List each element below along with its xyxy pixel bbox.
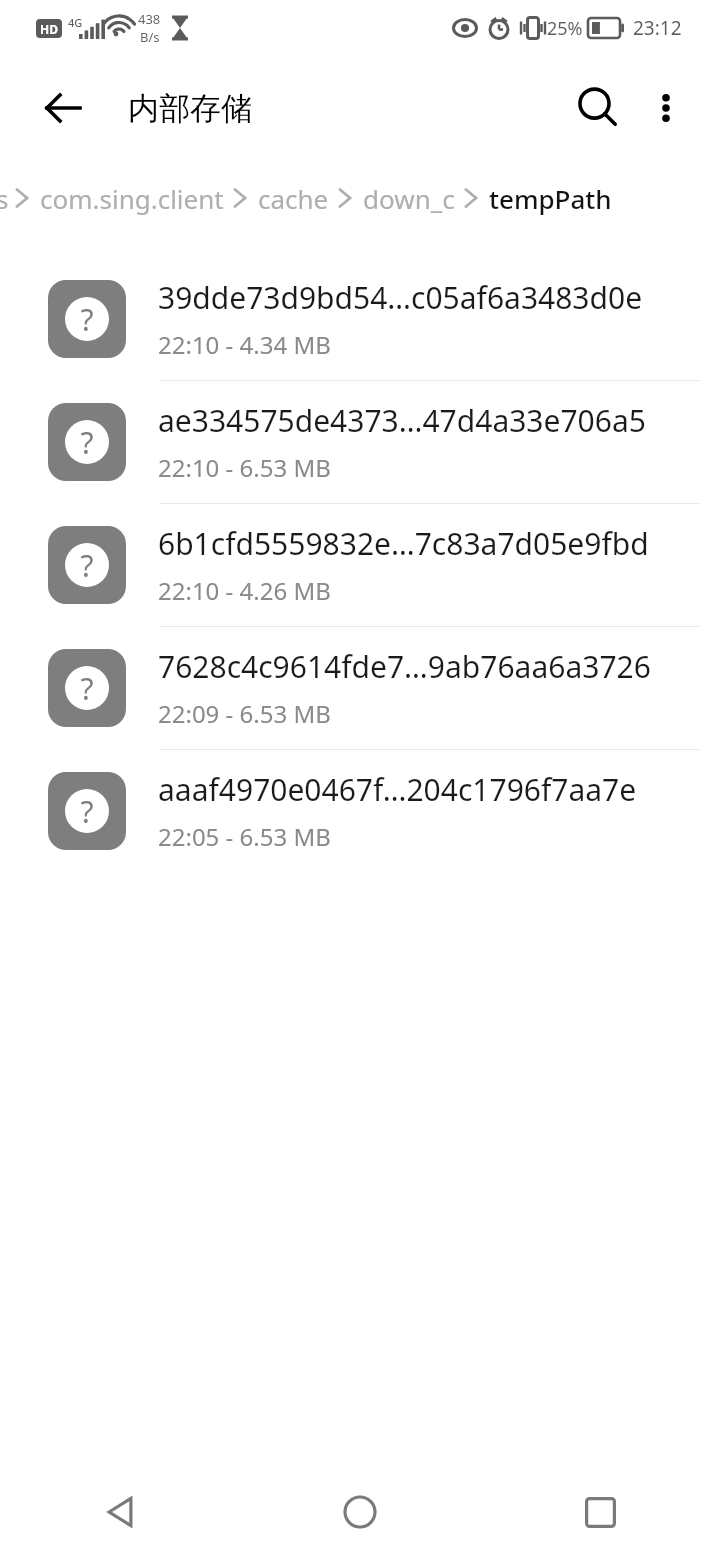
staticText: 25% <box>547 16 583 41</box>
staticText: ? <box>80 545 94 586</box>
button[interactable]: ? <box>0 381 720 504</box>
button[interactable]: ? <box>0 627 720 750</box>
staticText: down_c <box>363 181 455 216</box>
staticText: 22:10 - 4.26 MB <box>158 574 331 607</box>
staticText: 22:10 - 6.53 MB <box>158 451 331 484</box>
staticText: HD <box>40 21 58 37</box>
button[interactable]: tempPath <box>487 181 614 216</box>
button[interactable]: Search <box>562 72 634 144</box>
button[interactable]: Back <box>30 75 96 141</box>
button[interactable]: ? <box>0 258 720 381</box>
button[interactable]: ? <box>0 750 720 873</box>
staticText: ? <box>80 791 94 832</box>
staticText: ? <box>80 422 94 463</box>
staticText: 22:09 - 6.53 MB <box>158 697 331 730</box>
button[interactable]: down_c <box>361 181 457 216</box>
staticText: 39dde73d9bd54…c05af6a3483d0e <box>158 277 643 318</box>
staticText: aaaf4970e0467f…204c1796f7aa7e <box>158 769 637 810</box>
staticText: cache <box>258 181 329 216</box>
staticText: 22:05 - 6.53 MB <box>158 820 331 853</box>
staticText: tempPath <box>489 181 612 216</box>
button[interactable]: cache <box>256 181 331 216</box>
staticText: 22:10 - 4.34 MB <box>158 328 331 361</box>
button[interactable]: Recent apps <box>480 1464 720 1560</box>
button[interactable]: com.sing.client <box>38 181 226 216</box>
staticText: 7628c4c9614fde7…9ab76aa6a3726 <box>158 646 651 687</box>
staticText: 23:12 <box>633 15 682 41</box>
staticText: com.sing.client <box>40 181 224 216</box>
staticText: 438 <box>138 10 161 28</box>
staticText: B/s <box>140 28 160 46</box>
staticText: ae334575de4373…47d4a33e706a5 <box>158 400 646 441</box>
staticText: ? <box>80 668 94 709</box>
staticText: 内部存储 <box>128 89 252 128</box>
button[interactable]: Home <box>240 1464 480 1560</box>
staticText: 4G <box>68 15 83 30</box>
staticText: s <box>0 181 4 216</box>
button[interactable]: ? <box>0 504 720 627</box>
button[interactable]: Back <box>0 1464 240 1560</box>
button[interactable]: More options <box>634 76 698 140</box>
staticText: 6b1cfd5559832e…7c83a7d05e9fbd <box>158 523 649 564</box>
staticText: ? <box>80 299 94 340</box>
